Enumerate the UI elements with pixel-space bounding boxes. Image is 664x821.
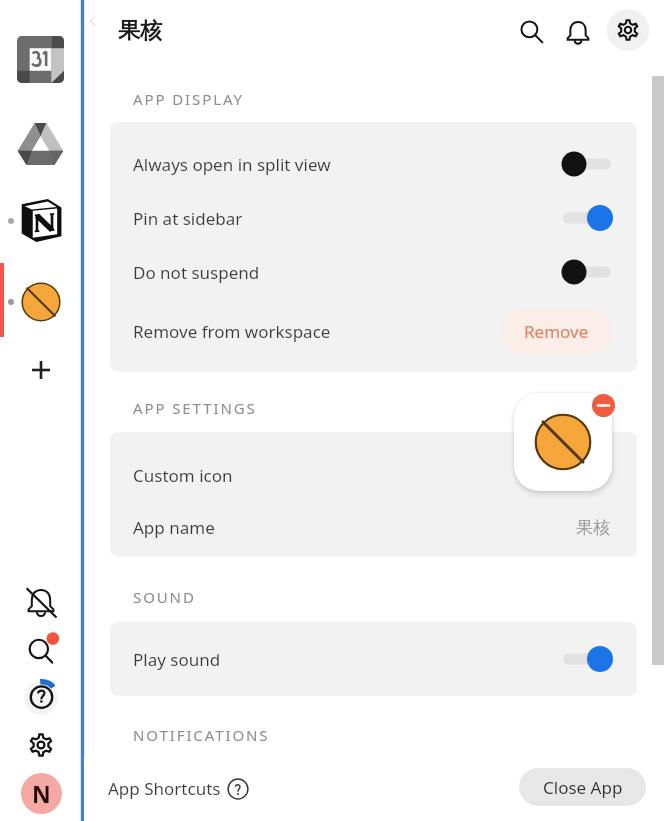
button[interactable]: Calendar xyxy=(17,36,64,83)
button[interactable]: Always open in split view xyxy=(110,137,637,191)
button[interactable]: Pin at sidebar xyxy=(110,191,637,245)
staticText: NOTIFICATIONS xyxy=(133,725,270,745)
button[interactable]: Mute notifications xyxy=(23,584,59,620)
button[interactable] xyxy=(561,646,613,672)
staticText: App Shortcuts xyxy=(108,777,221,800)
staticText: SOUND xyxy=(133,587,196,607)
staticText: N xyxy=(32,778,51,809)
button[interactable]: Notion xyxy=(17,197,64,244)
button[interactable] xyxy=(561,151,613,177)
staticText: App name xyxy=(133,516,215,539)
button[interactable] xyxy=(514,393,612,491)
button[interactable]: Settings xyxy=(29,733,53,757)
button[interactable]: Close App xyxy=(519,768,646,806)
button[interactable]: App Shortcuts xyxy=(108,777,249,800)
staticText: 果核 xyxy=(118,17,162,45)
button[interactable]: Notifications xyxy=(558,12,598,52)
button[interactable]: Guohe xyxy=(21,282,61,322)
button[interactable] xyxy=(561,205,613,231)
staticText: Pin at sidebar xyxy=(133,207,243,230)
button[interactable]: N xyxy=(21,773,62,814)
button[interactable]: Search xyxy=(514,14,550,50)
button[interactable]: Remove icon xyxy=(591,393,616,418)
staticText: Remove xyxy=(524,320,589,343)
button[interactable]: Do not suspend xyxy=(110,245,637,299)
staticText: Remove from workspace xyxy=(133,320,331,343)
button[interactable]: Play sound xyxy=(110,632,637,686)
button[interactable]: Settings xyxy=(607,9,649,51)
button[interactable]: Drive xyxy=(17,120,64,167)
staticText: APP SETTINGS xyxy=(133,398,257,418)
staticText: Do not suspend xyxy=(133,261,260,284)
staticText: Custom icon xyxy=(133,464,233,487)
staticText: Close App xyxy=(543,776,623,799)
button[interactable]: Help xyxy=(25,678,58,711)
button[interactable]: Custom icon xyxy=(110,448,637,502)
staticText: Always open in split view xyxy=(133,153,331,176)
button[interactable] xyxy=(561,259,613,285)
button[interactable]: Remove xyxy=(500,309,613,354)
button[interactable]: App name xyxy=(110,500,637,554)
button[interactable]: Add app xyxy=(26,355,56,385)
staticText: APP DISPLAY xyxy=(133,89,244,109)
staticText: 果核 xyxy=(576,517,610,538)
staticText: Play sound xyxy=(133,648,221,671)
button[interactable]: Remove from workspace xyxy=(110,304,637,358)
button[interactable]: Search xyxy=(23,632,59,668)
